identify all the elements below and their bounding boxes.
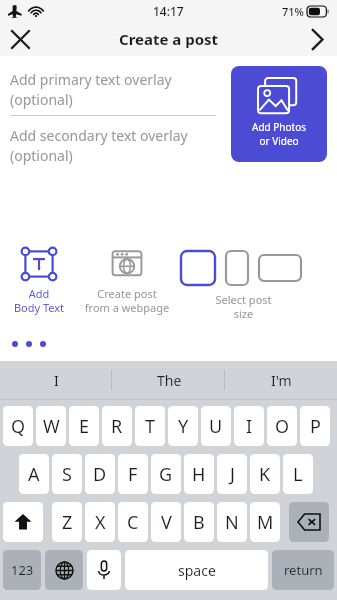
button[interactable]: I: [0, 361, 113, 399]
button[interactable]: J: [217, 454, 247, 494]
button[interactable]: X: [85, 502, 115, 542]
staticText: 123: [11, 561, 34, 579]
staticText: S: [62, 462, 72, 487]
staticText: T: [145, 414, 156, 439]
button[interactable]: Q: [3, 406, 33, 446]
staticText: space: [178, 561, 216, 580]
staticText: L: [293, 462, 303, 487]
staticText: R: [111, 414, 123, 439]
button[interactable]: Close: [0, 22, 40, 56]
button[interactable]: A: [19, 454, 49, 494]
staticText: Add primary text overlay (optional): [10, 70, 172, 109]
button[interactable]: Square post size: [180, 250, 216, 286]
staticText: Create post from a webpage: [78, 286, 176, 315]
staticText: N: [225, 510, 239, 535]
button[interactable]: Add Body Text: [0, 243, 78, 331]
staticText: D: [93, 462, 107, 487]
staticText: The: [157, 371, 182, 390]
staticText: Y: [178, 414, 189, 439]
staticText: X: [95, 510, 106, 535]
staticText: M: [257, 510, 274, 535]
staticText: I'm: [271, 371, 292, 390]
staticText: P: [310, 414, 321, 439]
staticText: H: [192, 462, 206, 487]
button[interactable]: G: [151, 454, 181, 494]
staticText: 71%: [282, 4, 304, 19]
staticText: K: [259, 462, 271, 487]
button[interactable]: B: [184, 502, 214, 542]
staticText: F: [128, 462, 138, 487]
staticText: V: [161, 510, 172, 535]
staticText: return: [284, 561, 323, 579]
staticText: B: [193, 510, 205, 535]
button[interactable]: S: [52, 454, 82, 494]
staticText: 14:17: [153, 3, 184, 19]
button[interactable]: H: [184, 454, 214, 494]
button[interactable]: E: [69, 406, 99, 446]
button[interactable]: Y: [168, 406, 198, 446]
staticText: G: [159, 462, 173, 487]
button[interactable]: Dictate: [87, 550, 121, 590]
staticText: O: [275, 414, 290, 439]
button[interactable]: Add Photos or Video: [231, 66, 327, 162]
staticText: A: [28, 462, 40, 487]
button[interactable]: D: [85, 454, 115, 494]
button[interactable]: P: [300, 406, 330, 446]
button[interactable]: M: [250, 502, 280, 542]
button[interactable]: V: [151, 502, 181, 542]
staticText: C: [127, 510, 139, 535]
staticText: W: [43, 414, 60, 439]
button[interactable]: R: [102, 406, 132, 446]
button[interactable]: I: [234, 406, 264, 446]
button[interactable]: return: [272, 550, 334, 590]
staticText: I: [246, 414, 253, 439]
staticText: Q: [11, 414, 26, 439]
staticText: Add Photos or Video: [231, 120, 327, 148]
button[interactable]: Next: [297, 22, 337, 56]
button[interactable]: U: [201, 406, 231, 446]
button[interactable]: Shift: [3, 502, 43, 542]
button[interactable]: Z: [52, 502, 82, 542]
staticText: Select post size: [176, 292, 311, 321]
button[interactable]: Backspace: [289, 502, 329, 542]
button[interactable]: Portrait post size: [225, 250, 249, 286]
staticText: J: [230, 462, 235, 487]
staticText: Add Body Text: [0, 286, 78, 315]
button[interactable]: The: [113, 361, 225, 399]
staticText: Create a post: [119, 29, 219, 49]
button[interactable]: F: [118, 454, 148, 494]
button[interactable]: I'm: [225, 361, 337, 399]
staticText: E: [79, 414, 90, 439]
button[interactable]: W: [36, 406, 66, 446]
button[interactable]: T: [135, 406, 165, 446]
button[interactable]: N: [217, 502, 247, 542]
button[interactable]: 123: [3, 550, 41, 590]
staticText: Add secondary text overlay (optional): [10, 126, 188, 165]
button[interactable]: O: [267, 406, 297, 446]
button[interactable]: K: [250, 454, 280, 494]
button[interactable]: Change keyboard: [45, 550, 83, 590]
staticText: U: [209, 414, 223, 439]
staticText: Z: [62, 510, 73, 535]
button[interactable]: Landscape post size: [258, 254, 302, 282]
button[interactable]: Create post from a webpage: [78, 243, 176, 331]
button[interactable]: L: [283, 454, 313, 494]
button[interactable]: C: [118, 502, 148, 542]
button[interactable]: space: [125, 550, 268, 590]
staticText: I: [54, 371, 59, 390]
